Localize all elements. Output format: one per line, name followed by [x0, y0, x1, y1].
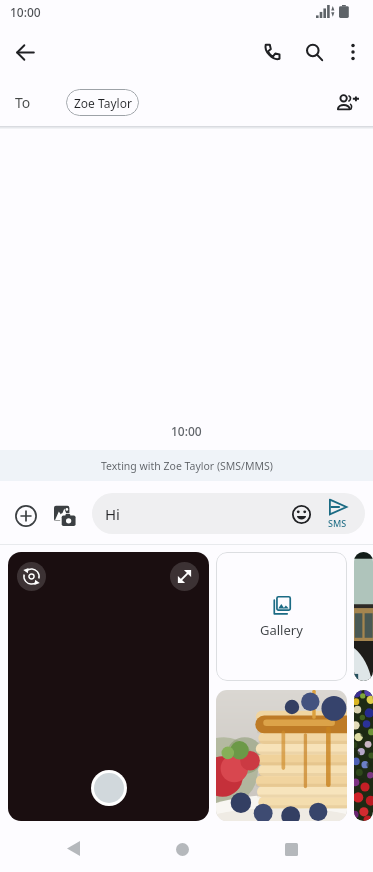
button[interactable]: Send SMS — [320, 497, 354, 531]
button[interactable]: Photo of flowers — [354, 690, 373, 821]
staticText: Texting with Zoe Taylor (SMS/MMS) — [101, 459, 273, 473]
button[interactable]: Add people — [328, 82, 368, 122]
button[interactable]: Photo — [354, 552, 373, 681]
button[interactable]: Hi — [92, 493, 365, 534]
staticText: Hi — [105, 504, 120, 524]
button[interactable]: More options — [333, 32, 373, 72]
staticText: SMS — [328, 517, 347, 529]
button[interactable]: Home — [158, 826, 206, 872]
button[interactable]: Zoe Taylor — [66, 89, 139, 116]
button[interactable]: Expand — [170, 562, 199, 591]
button[interactable]: Recent apps — [267, 826, 315, 872]
button[interactable]: Photo of pancakes — [216, 690, 347, 821]
staticText: 10:00 — [171, 423, 202, 439]
button[interactable]: Search — [294, 32, 334, 72]
staticText: To — [15, 93, 31, 112]
button[interactable]: Back — [6, 33, 45, 72]
button[interactable]: Back — [49, 825, 97, 872]
button[interactable]: Camera preview — [8, 552, 209, 821]
staticText: Gallery — [260, 621, 303, 639]
button[interactable]: Emoji — [286, 499, 316, 529]
staticText: 10:00 — [10, 4, 41, 20]
button[interactable]: Add attachment — [7, 497, 45, 535]
button[interactable]: Camera — [46, 497, 84, 535]
staticText: Zoe Taylor — [74, 95, 132, 111]
button[interactable]: Take photo — [91, 770, 127, 806]
button[interactable]: Switch camera — [17, 562, 46, 591]
button[interactable]: Call — [251, 32, 291, 72]
button[interactable]: Gallery — [216, 552, 347, 681]
